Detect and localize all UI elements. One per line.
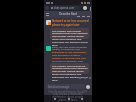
staticText: Network error has occurred please try ag… xyxy=(52,19,90,26)
button[interactable]: Message action xyxy=(88,76,91,79)
button[interactable]: Header action xyxy=(77,15,80,18)
button[interactable]: Header action xyxy=(82,15,85,18)
button[interactable]: Account xyxy=(83,6,87,10)
button[interactable]: Message action xyxy=(78,76,81,79)
staticText: Send a message xyxy=(48,85,70,89)
button[interactable]: Send xyxy=(86,85,90,89)
button[interactable]: Home xyxy=(66,96,71,101)
staticText: chat.openai.com xyxy=(54,6,75,10)
button[interactable]: chat.openai.com xyxy=(50,6,80,10)
button[interactable]: More options xyxy=(89,6,91,11)
button[interactable]: Menu xyxy=(46,13,50,17)
button[interactable]: Send a message xyxy=(46,84,85,89)
staticText: Describe Bard editor xyxy=(57,12,79,16)
button[interactable]: Message action xyxy=(83,76,86,79)
button[interactable]: Recent apps xyxy=(79,96,84,101)
button[interactable]: Header action xyxy=(87,15,90,18)
staticText: The content may include our updated resu… xyxy=(52,64,88,82)
button[interactable]: Back xyxy=(52,96,57,101)
button[interactable]: Home xyxy=(45,6,49,10)
staticText: The content may include updated results … xyxy=(52,29,88,47)
staticText: Free Research Preview. ChatGPT may produ… xyxy=(48,90,88,102)
staticText: Bard, the new large language model, is a… xyxy=(52,45,89,66)
